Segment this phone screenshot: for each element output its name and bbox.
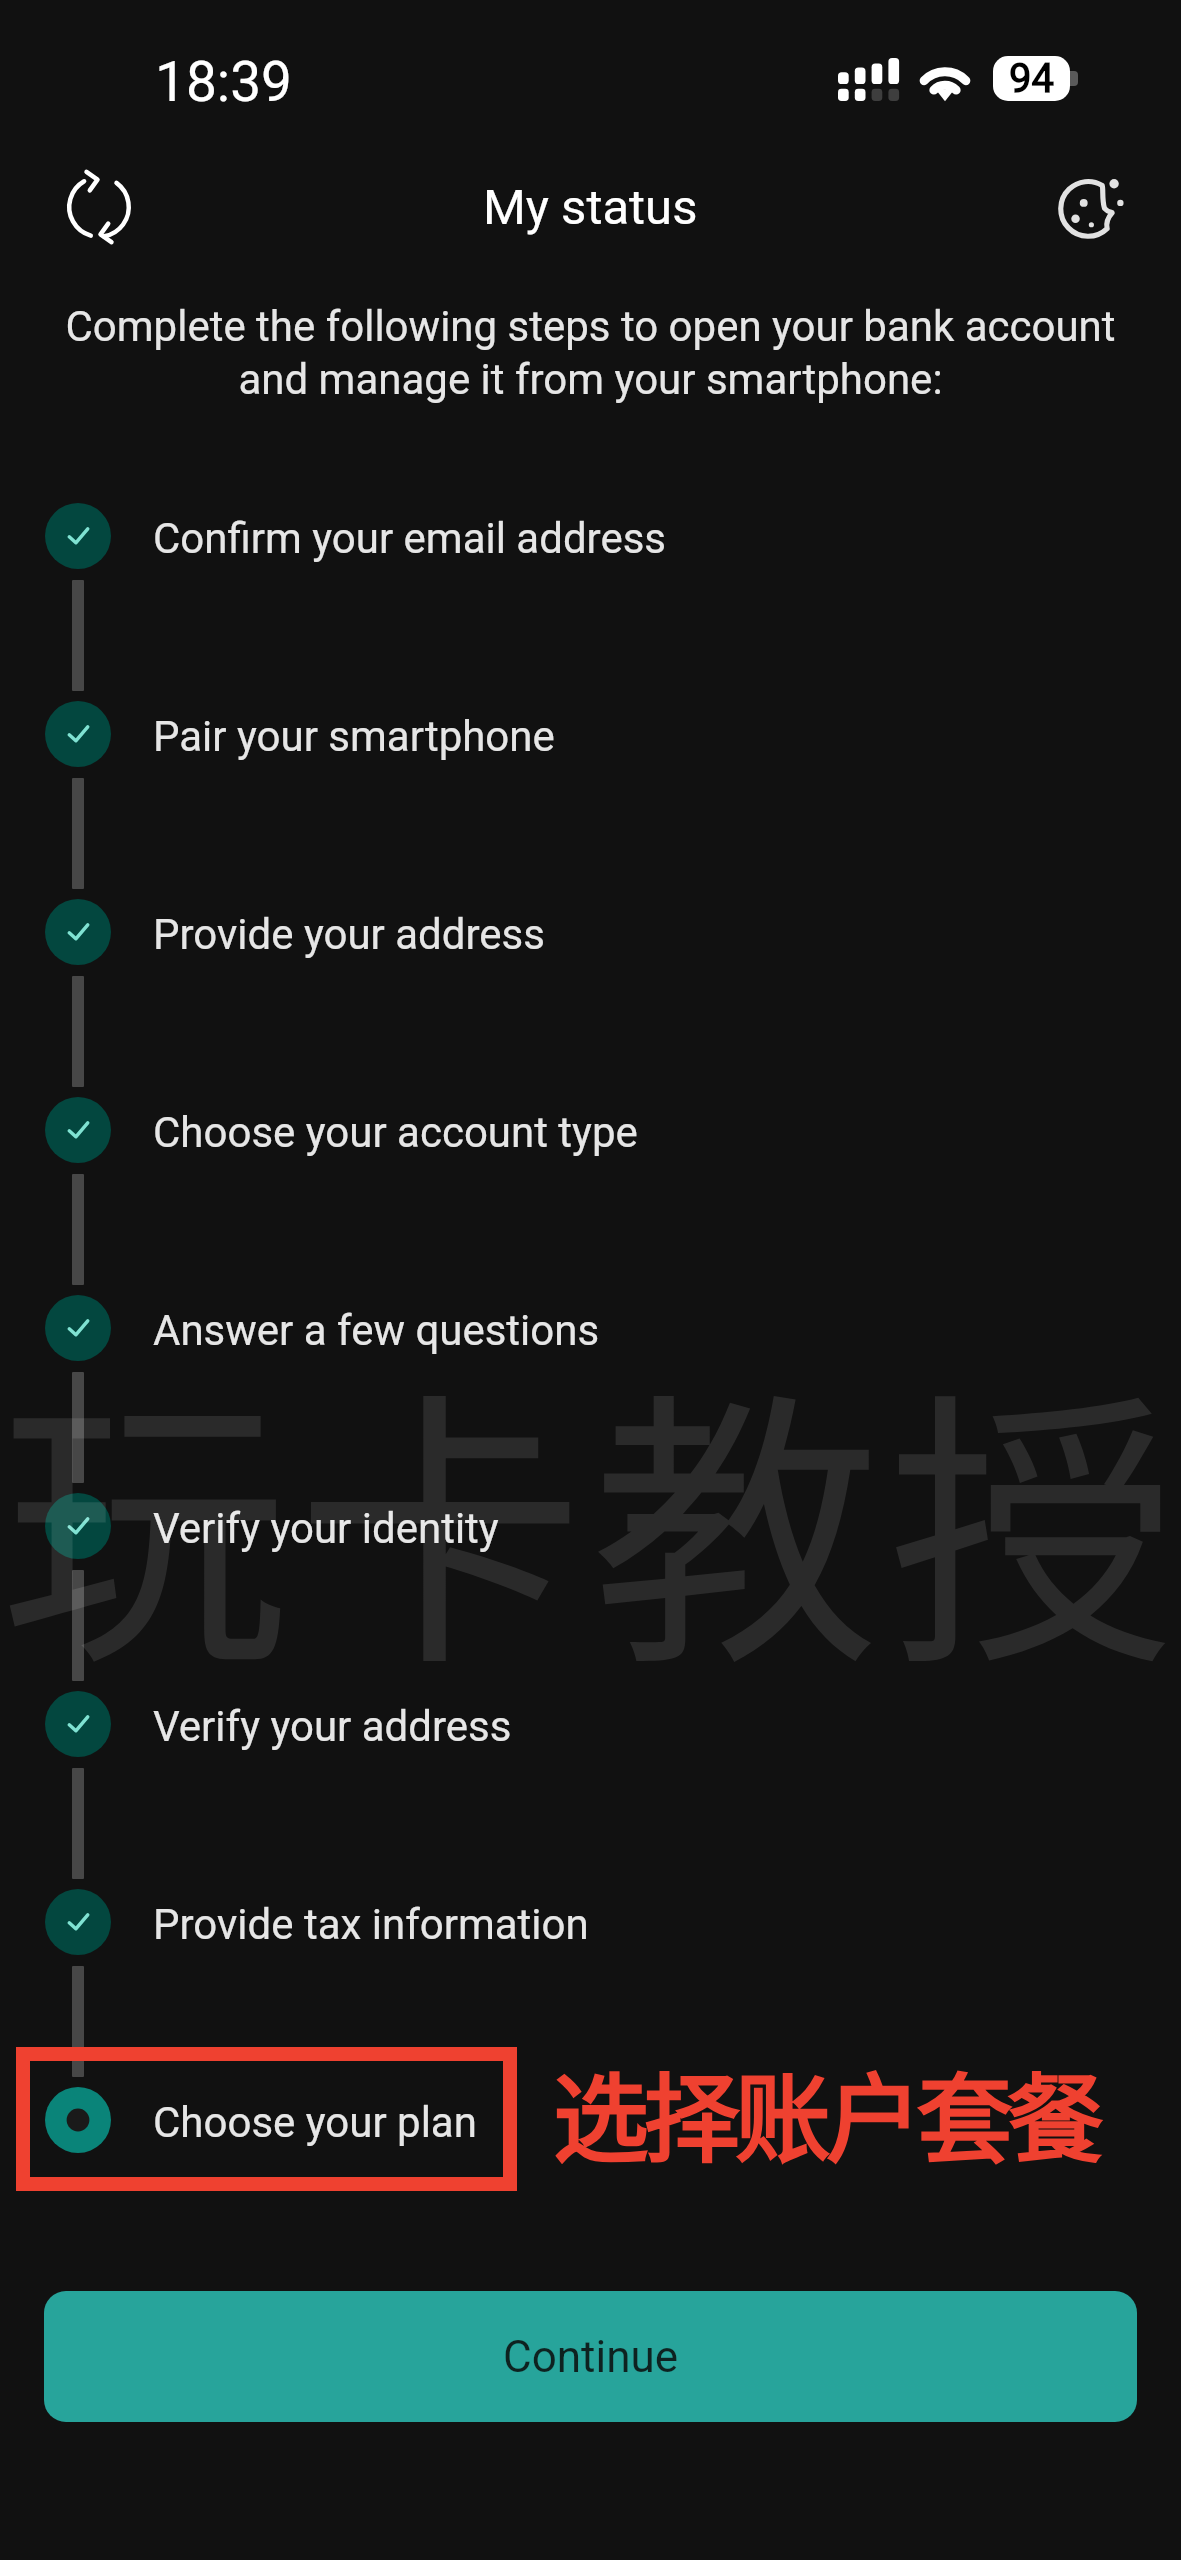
staticText: Choose your account type: [153, 1108, 638, 1157]
staticText: Verify your address: [153, 1702, 512, 1751]
staticText: Choose your plan: [153, 2098, 477, 2147]
button[interactable]: Verify your identity: [0, 1466, 1181, 1586]
button[interactable]: Verify your address: [0, 1664, 1181, 1784]
staticText: My status: [483, 179, 698, 236]
staticText: Provide tax information: [153, 1900, 589, 1949]
button[interactable]: Answer a few questions: [0, 1268, 1181, 1388]
button[interactable]: Continue: [44, 2291, 1137, 2422]
staticText: Answer a few questions: [153, 1306, 600, 1355]
staticText: 94: [1009, 56, 1054, 100]
button[interactable]: Cookie settings: [1035, 152, 1145, 262]
staticText: Complete the following steps to open you…: [52, 302, 1129, 404]
button[interactable]: Provide your address: [0, 872, 1181, 992]
button[interactable]: Choose your account type: [0, 1070, 1181, 1190]
button[interactable]: Refresh: [44, 152, 154, 262]
staticText: 18:39: [155, 50, 292, 114]
button[interactable]: Confirm your email address: [0, 476, 1181, 596]
button[interactable]: Choose your plan: [0, 2060, 1181, 2180]
staticText: Pair your smartphone: [153, 712, 555, 761]
staticText: Confirm your email address: [153, 514, 667, 563]
button[interactable]: Provide tax information: [0, 1862, 1181, 1982]
staticText: Provide your address: [153, 910, 545, 959]
staticText: Continue: [503, 2331, 679, 2383]
button[interactable]: Pair your smartphone: [0, 674, 1181, 794]
staticText: Verify your identity: [153, 1504, 499, 1553]
staticText: 玩卡教授: [0, 1304, 1181, 1721]
staticText: 选择账户套餐: [553, 2042, 1099, 2181]
